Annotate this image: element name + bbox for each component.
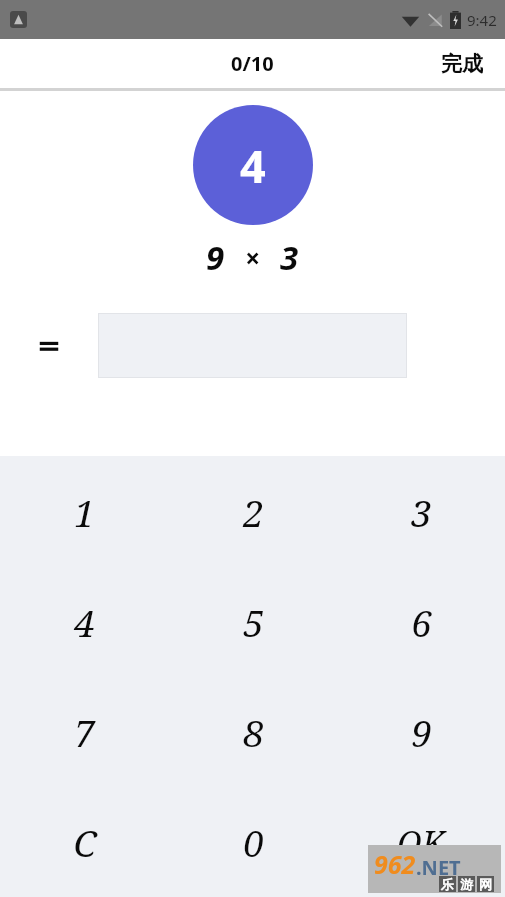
staticText: 962 (374, 847, 416, 881)
button[interactable]: 1 (0, 456, 169, 567)
staticText: 7 (74, 707, 95, 757)
staticText: 9 (206, 235, 225, 280)
staticText: 2 (243, 487, 264, 537)
button[interactable]: 4 (0, 567, 169, 677)
staticText: × (245, 240, 260, 275)
button[interactable]: 完成 (419, 43, 505, 85)
button[interactable]: 7 (0, 677, 169, 787)
staticText: .NET (416, 854, 461, 881)
button[interactable]: 8 (169, 677, 337, 787)
staticText: 游 (460, 876, 473, 892)
staticText: 6 (411, 597, 432, 647)
button[interactable]: 6 (337, 567, 505, 677)
button[interactable]: 5 (169, 567, 337, 677)
staticText: 3 (280, 235, 299, 280)
staticText: 4 (74, 597, 95, 647)
button[interactable]: OK (337, 787, 505, 897)
staticText: 1 (74, 487, 95, 537)
staticText: 9 (411, 707, 432, 757)
button[interactable]: C (0, 787, 169, 897)
staticText: 8 (243, 707, 264, 757)
staticText: OK (397, 820, 445, 865)
button[interactable]: 0 (169, 787, 337, 897)
staticText: 9:42 (467, 10, 497, 30)
staticText: 3 (411, 487, 432, 537)
button[interactable]: 9 (337, 677, 505, 787)
staticText: 完成 (441, 51, 483, 77)
staticText: 乐 (441, 876, 454, 892)
button[interactable]: 3 (337, 456, 505, 567)
staticText: 0/10 (231, 50, 274, 77)
button[interactable]: 2 (169, 456, 337, 567)
staticText: 4 (240, 135, 266, 196)
staticText: C (73, 817, 97, 867)
staticText: 网 (479, 876, 492, 892)
staticText: 0 (243, 817, 264, 867)
staticText: 5 (243, 597, 264, 647)
